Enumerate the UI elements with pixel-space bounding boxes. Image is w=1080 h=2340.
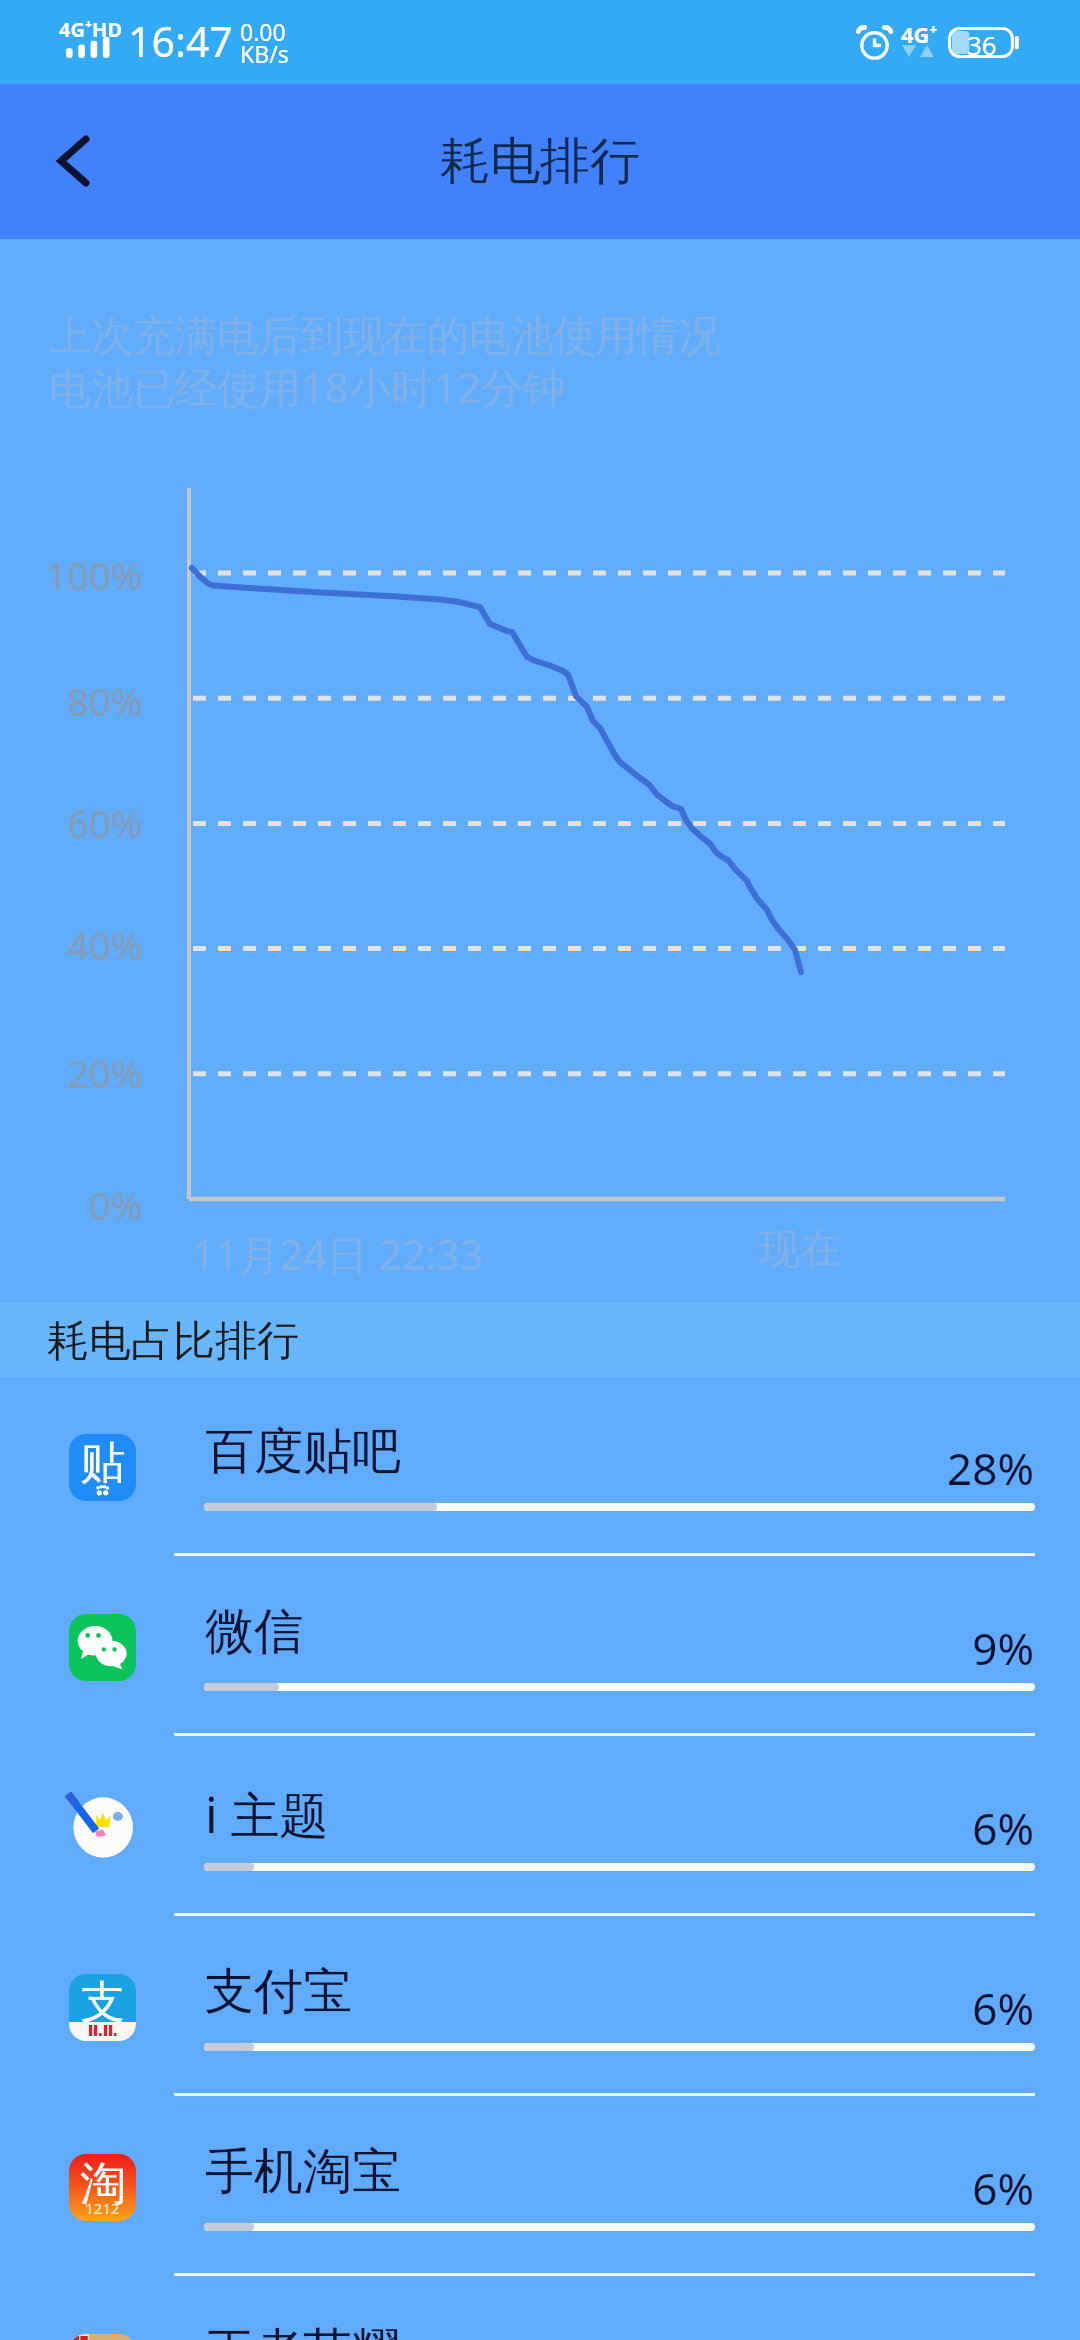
staticText: 80% (66, 675, 142, 727)
staticText: 20% (66, 1047, 142, 1099)
button[interactable]: 支 (0, 1917, 1080, 2097)
staticText: 耗电排行 (440, 130, 640, 193)
staticText: 百度贴吧 (205, 1421, 401, 1483)
staticText: 耗电占比排行 (47, 1315, 299, 1368)
staticText: 电池已经使用18小时12分钟 (49, 358, 566, 415)
staticText: 1212 (85, 2198, 120, 2218)
staticText: 16:47 (128, 13, 233, 69)
button[interactable]: 微信 (0, 1557, 1080, 1737)
staticText: i 主题 (205, 1781, 329, 1848)
button[interactable]: 淘 (0, 2097, 1080, 2277)
staticText: 100% (45, 549, 142, 601)
button[interactable]: 王者荣耀 (0, 2277, 1080, 2340)
staticText: 28% (860, 1438, 1034, 1498)
staticText: 40% (66, 919, 142, 971)
staticText: 0% (88, 1179, 142, 1231)
staticText: 60% (66, 797, 142, 849)
staticText: 贴 (80, 1435, 125, 1492)
staticText: 6% (860, 1978, 1034, 2038)
staticText: 4G⁺ (901, 19, 938, 49)
staticText: 0.00 (240, 16, 286, 47)
staticText: 4G⁺HD (59, 16, 123, 43)
staticText: 淘 (80, 2155, 126, 2213)
staticText: KB/s (240, 38, 289, 69)
staticText: 上次充满电后到现在的电池使用情况 (49, 310, 721, 363)
staticText: 6% (860, 1798, 1034, 1858)
staticText: 手机淘宝 (205, 2141, 401, 2203)
staticText: 支 (81, 1975, 125, 2030)
staticText: 王者荣耀 (205, 2321, 401, 2340)
staticText: 9% (860, 1618, 1034, 1678)
staticText: 支付宝 (205, 1961, 352, 2023)
staticText: 11月24日 22:33 (192, 1226, 484, 1282)
staticText: 36 (967, 27, 997, 58)
staticText: 微信 (205, 1601, 303, 1663)
staticText: 6% (860, 2158, 1034, 2218)
button[interactable]: Back (16, 108, 126, 214)
staticText: 现在 (759, 1224, 841, 1276)
button[interactable]: i 主题 (0, 1737, 1080, 1917)
button[interactable]: 贴 (0, 1377, 1080, 1557)
